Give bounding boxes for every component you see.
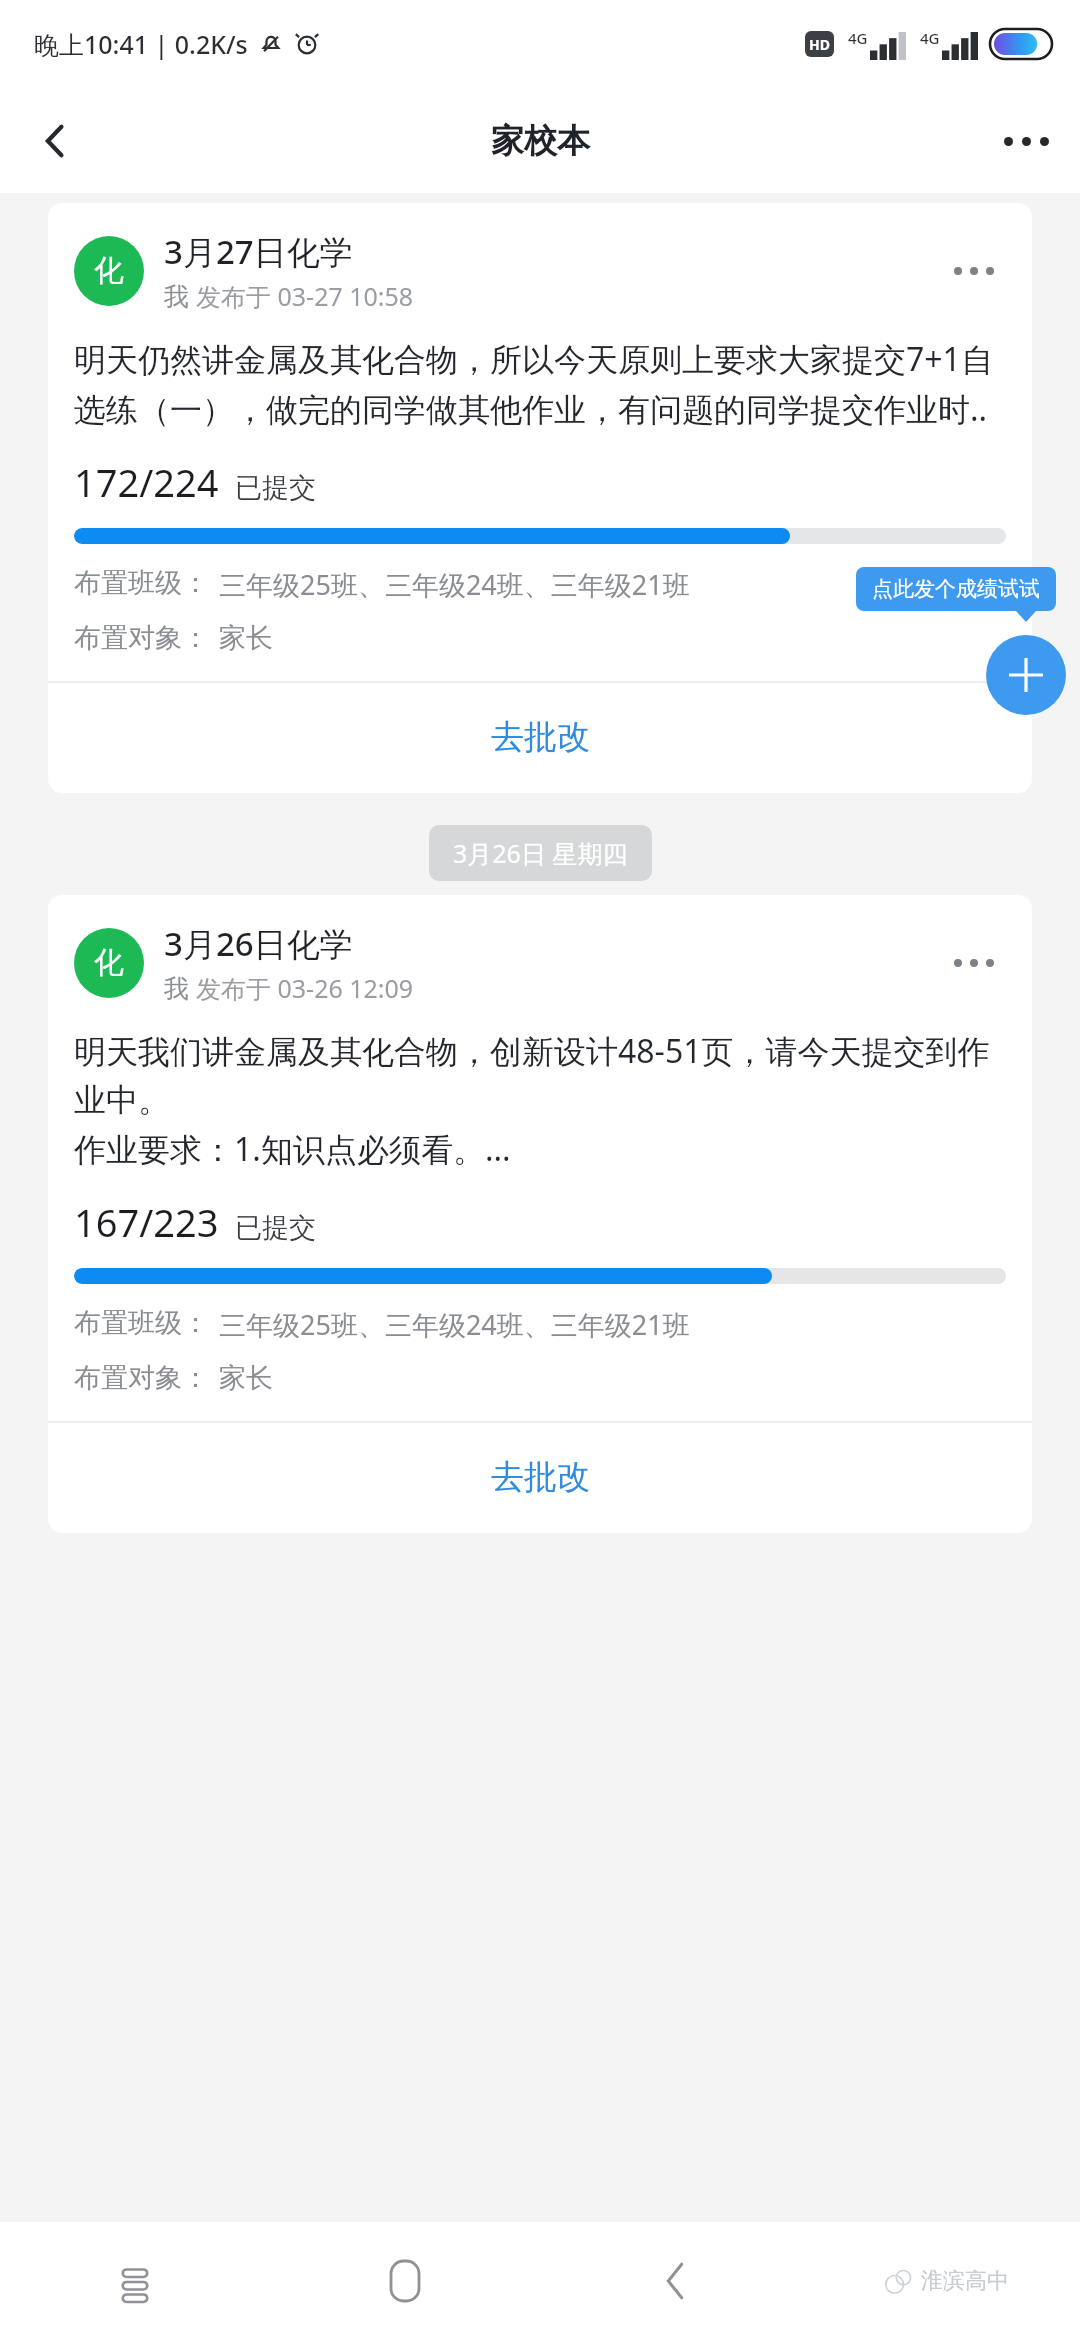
staticText: 去批改 [491, 716, 590, 758]
button[interactable]: 化 [48, 203, 1032, 793]
staticText: 明天我们讲金属及其化合物，创新设计48-51页，请今天提交到作业中。 作业要求：… [74, 1029, 1006, 1170]
staticText: 点此发个成绩试试 [872, 576, 1040, 602]
button[interactable]: 去批改 [48, 1423, 1032, 1533]
staticText: 化 [94, 944, 124, 982]
staticText: 4G [848, 28, 868, 48]
button[interactable]: 最近任务 [0, 2222, 270, 2340]
staticText: 4G [920, 28, 940, 48]
staticText: 布置对象： [74, 1361, 209, 1395]
staticText: 家长 [219, 621, 273, 655]
staticText: 去批改 [491, 1456, 590, 1498]
button[interactable]: 主屏幕 [270, 2222, 540, 2340]
staticText: 化 [94, 252, 124, 290]
staticText: 3月26日 星期四 [453, 836, 628, 870]
staticText: 明天仍然讲金属及其化合物，所以今天原则上要求大家提交7+1自选练（一），做完的同… [74, 337, 1006, 430]
button[interactable]: 更多 [988, 103, 1064, 179]
staticText: 三年级25班、三年级24班、三年级21班 [219, 566, 690, 603]
button[interactable]: 返回 [18, 103, 94, 179]
staticText: 172/224 [74, 456, 219, 508]
button[interactable]: 化 [48, 895, 1032, 1533]
staticText: 已提交 [235, 1211, 316, 1245]
staticText: 已提交 [235, 471, 316, 505]
button[interactable]: 点此发个成绩试试 [856, 567, 1056, 611]
button[interactable]: 返回 [540, 2222, 810, 2340]
staticText: 布置班级： [74, 1306, 209, 1340]
staticText: 发布于 03-27 10:58 [196, 279, 414, 313]
staticText: 布置班级： [74, 566, 209, 600]
staticText: 167/223 [74, 1196, 219, 1248]
staticText: 家长 [219, 1361, 273, 1395]
button[interactable]: 更多操作 [942, 239, 1006, 303]
button[interactable]: 新建 [986, 635, 1066, 715]
staticText: 布置对象： [74, 621, 209, 655]
staticText: 淮滨高中 [921, 2267, 1009, 2295]
staticText: 3月26日化学 [164, 921, 353, 966]
staticText: 3月27日化学 [164, 229, 353, 274]
staticText: 我 [164, 973, 189, 1004]
staticText: 三年级25班、三年级24班、三年级21班 [219, 1306, 690, 1343]
staticText: 发布于 03-26 12:09 [196, 971, 414, 1005]
staticText: 我 [164, 281, 189, 312]
staticText: 晚上10:41 | 0.2K/s [34, 27, 248, 61]
staticText: 家校本 [491, 120, 590, 162]
button[interactable]: 去批改 [48, 683, 1032, 793]
staticText: HD [809, 35, 830, 54]
button[interactable]: 更多操作 [942, 931, 1006, 995]
